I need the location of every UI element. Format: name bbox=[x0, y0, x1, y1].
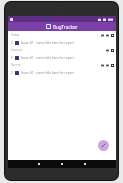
button[interactable]: Action bbox=[106, 34, 109, 37]
staticText: BugTracker bbox=[53, 24, 78, 30]
button[interactable]: Action bbox=[106, 49, 109, 52]
button[interactable]: More options bbox=[111, 34, 114, 37]
button[interactable]: Action bbox=[101, 64, 104, 67]
staticText: 0 bbox=[11, 56, 13, 60]
staticText: Recent bbox=[11, 63, 21, 67]
staticText: Sources bbox=[11, 48, 23, 52]
staticText: 0 bbox=[11, 71, 13, 75]
button[interactable]: Recent bbox=[8, 61, 116, 76]
button[interactable]: Action bbox=[101, 34, 104, 37]
button[interactable]: More options bbox=[111, 64, 114, 67]
button[interactable]: Recents bbox=[82, 161, 88, 167]
button[interactable]: Sources bbox=[8, 46, 116, 61]
staticText: Issue #1 · some title here for report bbox=[21, 71, 74, 75]
staticText: Issue #1 · some title here for report bbox=[21, 41, 74, 45]
button[interactable]: Home bbox=[59, 161, 65, 167]
staticText: Issue #1 · some title here for report bbox=[21, 56, 74, 60]
button[interactable]: Today bbox=[8, 31, 116, 46]
button[interactable]: Back bbox=[36, 161, 42, 167]
staticText: Today bbox=[11, 33, 20, 37]
button[interactable]: Compose new report bbox=[98, 140, 109, 151]
staticText: 0 bbox=[11, 41, 13, 45]
button[interactable]: More options bbox=[111, 49, 114, 52]
button[interactable]: Action bbox=[106, 64, 109, 67]
